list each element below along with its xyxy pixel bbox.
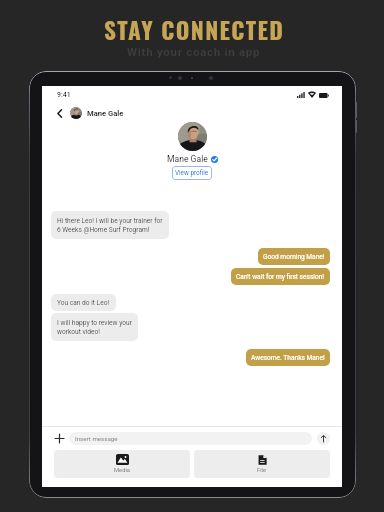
button[interactable]: Back	[53, 107, 66, 120]
staticText: File	[257, 467, 267, 474]
button[interactable]: Hi there Leo! I will be your trainer for…	[51, 211, 169, 239]
button[interactable]: Can't wait for my first session!	[231, 268, 330, 285]
staticText: Mane Gale	[167, 154, 208, 164]
staticText: Good morning Mane!	[263, 252, 325, 261]
button[interactable]: View profile	[172, 166, 212, 180]
button[interactable]: Insert message	[69, 432, 312, 445]
staticText: Awesome. Thanks Mane!	[251, 353, 325, 362]
button[interactable]: Send	[317, 432, 330, 445]
staticText: View profile	[175, 169, 209, 177]
button[interactable]: Add attachment	[55, 434, 64, 443]
staticText: STAY CONNECTED	[104, 12, 285, 47]
staticText: Insert message	[75, 435, 118, 442]
staticText: 9:41	[57, 91, 71, 99]
staticText: With your coach in app	[127, 45, 261, 58]
staticText: Hi there Leo! I will be your trainer for…	[57, 216, 163, 234]
staticText: You can do it Leo!	[57, 298, 110, 307]
staticText: Mane Gale	[87, 109, 124, 118]
button[interactable]: I will happy to review your workout vide…	[51, 313, 138, 341]
staticText: I will happy to review your workout vide…	[57, 318, 132, 336]
staticText: Can't wait for my first session!	[236, 272, 325, 281]
button[interactable]: File	[194, 450, 330, 478]
button[interactable]: Good morning Mane!	[258, 248, 330, 265]
button[interactable]: Awesome. Thanks Mane!	[246, 349, 330, 366]
staticText: Media	[114, 467, 130, 474]
button[interactable]: Media	[54, 450, 190, 478]
button[interactable]: You can do it Leo!	[51, 294, 116, 311]
